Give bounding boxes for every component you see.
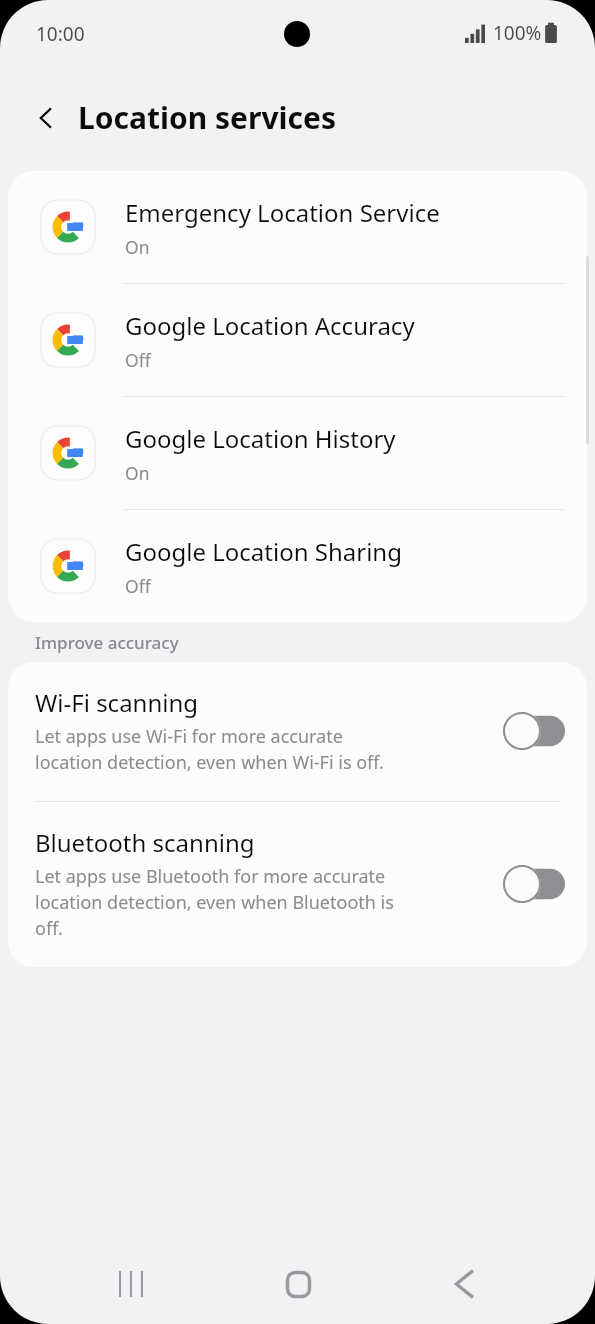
- staticText: Google Location History: [125, 422, 396, 455]
- staticText: Let apps use Wi-Fi for more accurate loc…: [35, 724, 384, 775]
- staticText: Wi-Fi scanning: [35, 686, 199, 719]
- staticText: Let apps use Bluetooth for more accurate…: [35, 864, 394, 941]
- staticText: Google Location Sharing: [125, 535, 402, 568]
- button[interactable]: Home: [262, 1248, 334, 1320]
- staticText: 100%: [493, 20, 542, 46]
- button[interactable]: Recent apps: [95, 1248, 167, 1320]
- staticText: Off: [125, 574, 151, 598]
- button[interactable]: Toggle off: [503, 712, 565, 750]
- staticText: Emergency Location Service: [125, 196, 440, 229]
- staticText: Google Location Accuracy: [125, 309, 415, 342]
- button[interactable]: Google Location Sharing: [8, 510, 587, 622]
- button[interactable]: Back: [24, 96, 68, 140]
- button[interactable]: Bluetooth scanning: [8, 802, 587, 967]
- staticText: 10:00: [36, 21, 85, 47]
- staticText: On: [125, 235, 150, 259]
- staticText: Bluetooth scanning: [35, 826, 255, 859]
- staticText: On: [125, 461, 150, 485]
- button[interactable]: Google Location Accuracy: [8, 284, 587, 396]
- button[interactable]: Emergency Location Service: [8, 171, 587, 283]
- staticText: Off: [125, 348, 151, 372]
- button[interactable]: Google Location History: [8, 397, 587, 509]
- staticText: Improve accuracy: [35, 631, 179, 654]
- button[interactable]: Wi-Fi scanning: [8, 662, 587, 801]
- button[interactable]: Toggle off: [503, 865, 565, 903]
- button[interactable]: Back: [428, 1248, 500, 1320]
- staticText: Location services: [78, 97, 336, 138]
